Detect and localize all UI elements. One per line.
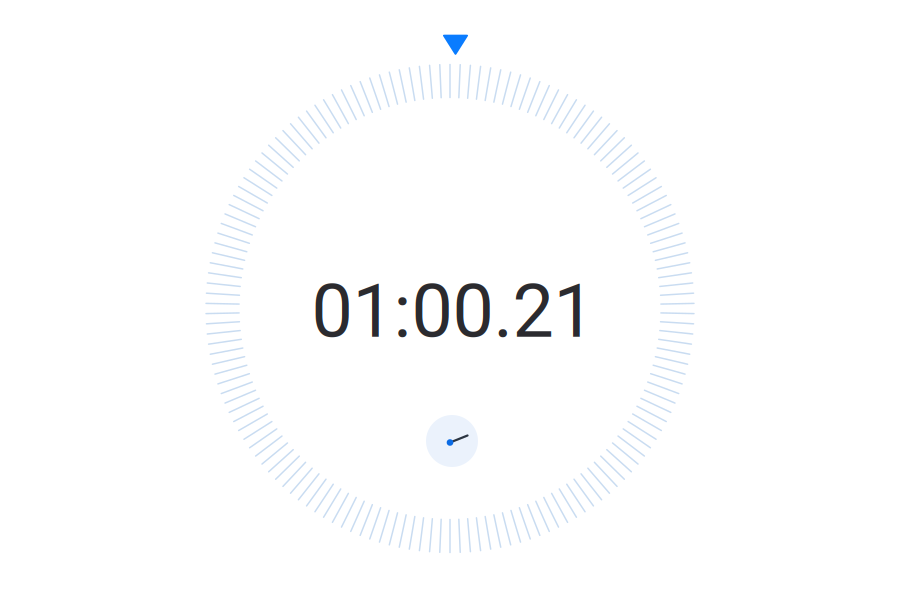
staticText: 01:00.21 bbox=[311, 268, 594, 355]
button[interactable]: Stopwatch, 01:00.21 elapsed bbox=[0, 0, 900, 600]
